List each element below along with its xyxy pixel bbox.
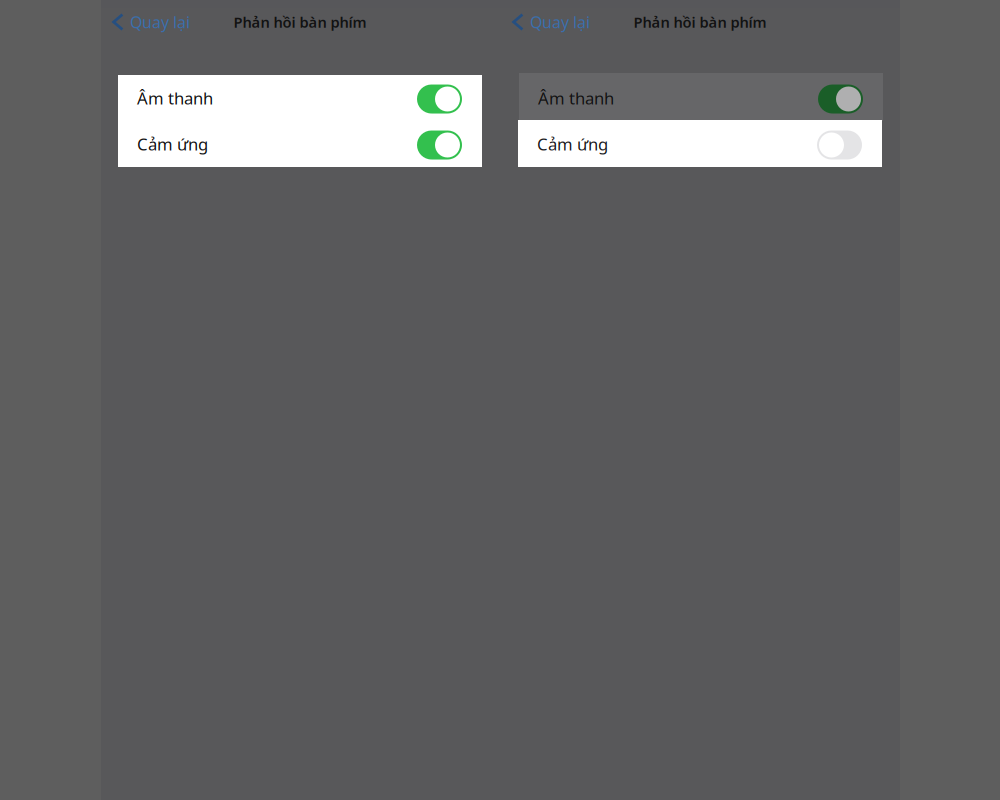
button[interactable]: Quay lại bbox=[112, 8, 190, 36]
staticText: Cảm ứng bbox=[537, 133, 608, 155]
staticText: Phản hồi bàn phím bbox=[233, 12, 366, 32]
staticText: Phản hồi bàn phím bbox=[633, 12, 766, 32]
staticText: Cảm ứng bbox=[137, 133, 208, 155]
button[interactable]: Âm thanh bbox=[118, 75, 482, 121]
staticText: Quay lại bbox=[530, 11, 590, 33]
button[interactable]: Cảm ứng bbox=[518, 121, 882, 167]
button[interactable]: Âm thanh bbox=[519, 75, 883, 121]
staticText: Âm thanh bbox=[137, 87, 213, 109]
button[interactable]: Cảm ứng bbox=[118, 121, 482, 167]
staticText: Âm thanh bbox=[538, 87, 614, 109]
staticText: Quay lại bbox=[130, 11, 190, 33]
button[interactable]: Quay lại bbox=[512, 8, 590, 36]
